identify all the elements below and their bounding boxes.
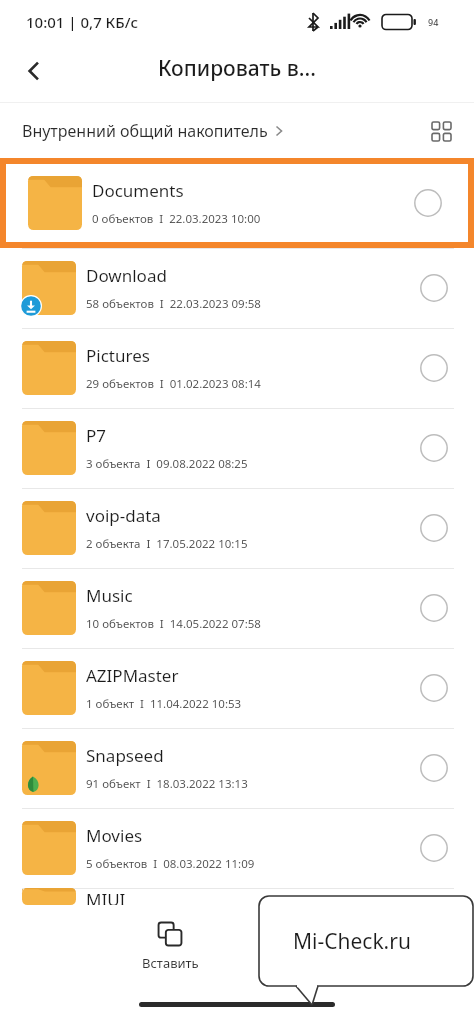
staticText: Snapseed <box>86 744 164 767</box>
staticText: Pictures <box>86 344 150 367</box>
staticText: Mi-Check.ru <box>293 927 411 956</box>
button[interactable]: Select Documents <box>408 183 448 223</box>
button[interactable]: Movies <box>0 808 474 888</box>
staticText: Копировать в... <box>158 54 316 83</box>
staticText: 94 <box>428 16 439 28</box>
staticText: 10:01 | 0,7 КБ/с <box>26 12 138 32</box>
button[interactable]: voip-data <box>0 488 474 568</box>
staticText: 29 объектов I 01.02.2023 08:14 <box>86 376 261 392</box>
button[interactable]: Select AZIPMaster <box>414 668 454 708</box>
staticText: 3 объекта I 09.08.2022 08:25 <box>86 456 248 472</box>
button[interactable]: Select P7 <box>414 428 454 468</box>
staticText: 58 объектов I 22.03.2023 09:58 <box>86 296 261 312</box>
staticText: Вставить <box>142 954 199 972</box>
staticText: MIUI <box>86 888 126 905</box>
button[interactable]: Select voip-data <box>414 508 454 548</box>
button[interactable]: Внутренний общий накопитель <box>22 120 286 142</box>
staticText: 1 объект I 11.04.2022 10:53 <box>86 696 242 712</box>
button[interactable]: Download <box>0 248 474 328</box>
staticText: 0 объектов I 22.03.2023 10:00 <box>92 211 261 227</box>
button[interactable]: Back <box>10 47 58 95</box>
button[interactable]: AZIPMaster <box>0 648 474 728</box>
button[interactable]: Отмена <box>256 917 352 976</box>
staticText: 91 объект I 18.03.2022 13:13 <box>86 776 248 792</box>
staticText: Внутренний общий накопитель <box>22 120 268 142</box>
staticText: Movies <box>86 824 143 847</box>
staticText: voip-data <box>86 504 161 527</box>
staticText: Music <box>86 584 133 607</box>
staticText: P7 <box>86 424 107 447</box>
staticText: AZIPMaster <box>86 664 179 687</box>
button[interactable]: Select Music <box>414 588 454 628</box>
staticText: Documents <box>92 179 184 202</box>
button[interactable]: Snapseed <box>0 728 474 808</box>
button[interactable]: Documents <box>0 158 474 248</box>
button[interactable]: Music <box>0 568 474 648</box>
button[interactable]: Select Download <box>414 268 454 308</box>
staticText: 2 объекта I 17.05.2022 10:15 <box>86 536 248 552</box>
button[interactable]: Select Movies <box>414 828 454 868</box>
button[interactable]: Select Snapseed <box>414 748 454 788</box>
staticText: 5 объектов I 08.03.2022 11:09 <box>86 856 255 872</box>
button[interactable]: Grid view <box>420 110 462 152</box>
staticText: 10 объектов I 14.05.2022 07:58 <box>86 616 261 632</box>
staticText: Download <box>86 264 167 287</box>
button[interactable]: Pictures <box>0 328 474 408</box>
button[interactable]: Вставить <box>122 917 218 976</box>
button[interactable]: P7 <box>0 408 474 488</box>
button[interactable]: MIUI <box>0 888 474 905</box>
button[interactable]: Select Pictures <box>414 348 454 388</box>
